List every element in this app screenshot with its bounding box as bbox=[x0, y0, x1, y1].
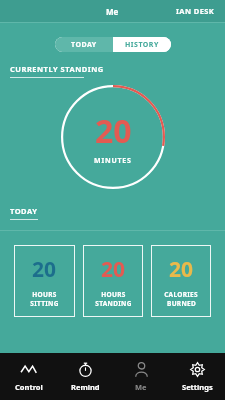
staticText: Settings bbox=[182, 382, 213, 392]
staticText: Me bbox=[135, 382, 147, 392]
staticText: TODAY bbox=[71, 40, 97, 50]
button[interactable]: HISTORY bbox=[113, 37, 171, 52]
button[interactable]: Settings bbox=[169, 353, 225, 400]
staticText: HOURS bbox=[32, 290, 57, 299]
button[interactable]: Me bbox=[113, 353, 169, 400]
staticText: 20 bbox=[101, 255, 126, 284]
button[interactable]: 20 bbox=[14, 245, 75, 317]
staticText: TODAY bbox=[10, 206, 38, 216]
button[interactable]: 20 bbox=[83, 245, 143, 317]
button[interactable]: 20 bbox=[151, 245, 211, 317]
staticText: MINUTES bbox=[94, 156, 132, 166]
staticText: 20 bbox=[169, 255, 194, 284]
staticText: CURRENTLY STANDING bbox=[10, 64, 104, 74]
staticText: Remind bbox=[71, 382, 100, 392]
button[interactable]: Control bbox=[0, 353, 57, 400]
staticText: Me bbox=[106, 6, 119, 17]
button[interactable]: IAN DESK bbox=[166, 2, 225, 20]
button[interactable]: TODAY bbox=[55, 37, 113, 52]
staticText: Control bbox=[15, 382, 43, 392]
staticText: HISTORY bbox=[125, 40, 159, 50]
staticText: BURNED bbox=[167, 299, 196, 308]
staticText: 20 bbox=[32, 255, 57, 284]
staticText: STANDING bbox=[95, 299, 132, 308]
staticText: 20 bbox=[95, 109, 132, 153]
staticText: SITTING bbox=[30, 299, 59, 308]
staticText: HOURS bbox=[101, 290, 126, 299]
staticText: IAN DESK bbox=[176, 6, 215, 16]
button[interactable]: Remind bbox=[57, 353, 113, 400]
staticText: CALORIES bbox=[164, 290, 198, 299]
